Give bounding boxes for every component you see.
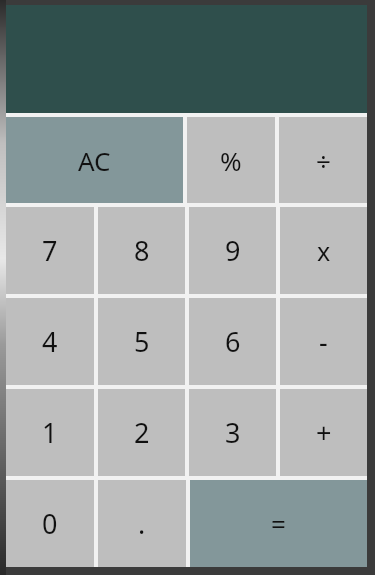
button[interactable]: 2	[98, 389, 185, 476]
staticText: 6	[225, 323, 241, 360]
button[interactable]: 8	[98, 207, 185, 294]
button[interactable]: 9	[189, 207, 276, 294]
staticText: %	[220, 143, 242, 178]
staticText: 3	[225, 414, 241, 451]
button[interactable]: 7	[6, 207, 94, 294]
staticText: 2	[134, 414, 150, 451]
button[interactable]: %	[187, 117, 275, 203]
button[interactable]: 4	[6, 298, 94, 385]
staticText: 8	[134, 232, 150, 269]
staticText: 7	[42, 232, 58, 269]
staticText: 0	[42, 505, 58, 542]
staticText: =	[271, 506, 286, 541]
staticText: 4	[42, 323, 58, 360]
staticText: .	[138, 505, 146, 542]
button[interactable]: ÷	[279, 117, 367, 203]
button[interactable]: .	[98, 480, 186, 567]
button[interactable]: x	[280, 207, 367, 294]
button[interactable]: 3	[189, 389, 276, 476]
button[interactable]: =	[190, 480, 367, 567]
button[interactable]: 6	[189, 298, 276, 385]
staticText: +	[316, 414, 332, 451]
staticText: 9	[225, 232, 241, 269]
button[interactable]: 5	[98, 298, 185, 385]
staticText: 5	[134, 323, 150, 360]
button[interactable]: -	[280, 298, 367, 385]
staticText: ÷	[316, 143, 331, 178]
staticText: x	[317, 234, 331, 268]
button[interactable]: +	[280, 389, 367, 476]
button[interactable]: AC	[6, 117, 183, 203]
staticText: 1	[42, 414, 58, 451]
staticText: -	[319, 323, 328, 360]
button[interactable]: 0	[6, 480, 94, 567]
staticText: AC	[78, 143, 111, 178]
button[interactable]: 1	[6, 389, 94, 476]
